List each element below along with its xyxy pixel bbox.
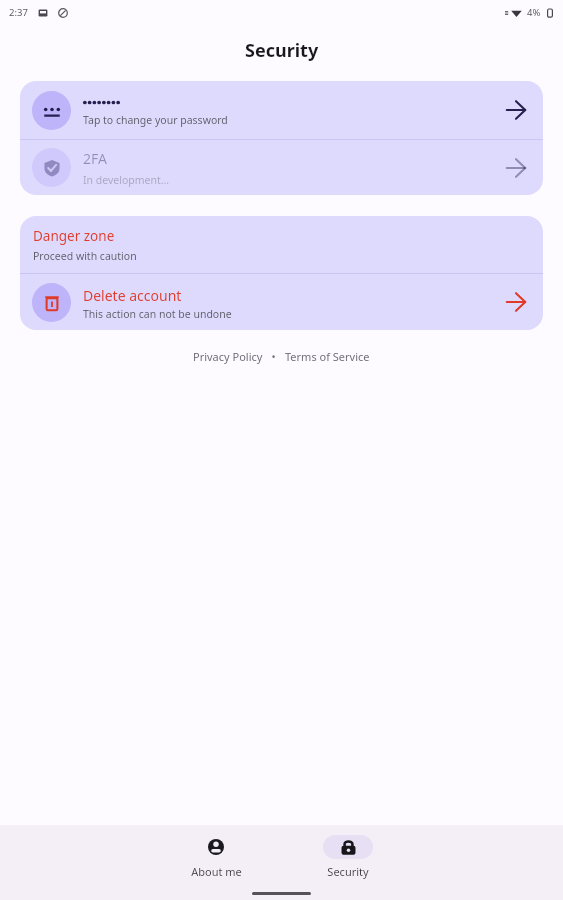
button[interactable]: 2FA — [503, 155, 529, 181]
button[interactable]: Delete account — [20, 274, 543, 330]
button[interactable]: Terms of Service — [285, 345, 370, 368]
button[interactable]: About me — [150, 825, 282, 879]
button[interactable]: 2FA — [20, 140, 543, 195]
staticText: 2:37 — [9, 6, 28, 19]
staticText: Security — [327, 864, 369, 879]
staticText: Delete account — [83, 286, 182, 305]
staticText: • — [263, 349, 285, 364]
button[interactable]: Security — [282, 825, 414, 879]
staticText: Proceed with caution — [33, 249, 137, 263]
staticText: Terms of Service — [285, 349, 370, 364]
staticText: Privacy Policy — [193, 349, 263, 364]
staticText: About me — [191, 864, 242, 879]
button[interactable]: Delete account — [503, 289, 529, 315]
button[interactable]: Privacy Policy — [193, 345, 263, 368]
button[interactable]: Tap to change your password — [20, 81, 543, 139]
staticText: In development... — [83, 173, 170, 187]
staticText: Security — [245, 38, 319, 63]
staticText: Danger zone — [33, 227, 115, 245]
staticText: Tap to change your password — [83, 113, 228, 127]
staticText: 2FA — [83, 149, 107, 168]
staticText: This action can not be undone — [83, 307, 232, 321]
staticText: 4% — [527, 6, 541, 19]
button[interactable]: Change password — [503, 97, 529, 123]
